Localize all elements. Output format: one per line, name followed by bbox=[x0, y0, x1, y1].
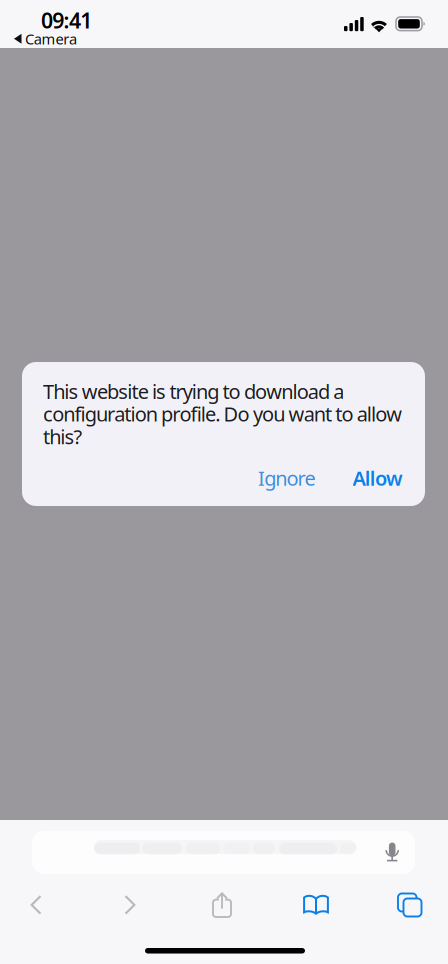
button[interactable]: Back bbox=[0, 882, 72, 928]
button[interactable]: Forward bbox=[94, 882, 166, 928]
staticText: This website is trying to download a con… bbox=[43, 378, 402, 450]
staticText: Ignore bbox=[258, 465, 316, 491]
button[interactable]: Share bbox=[186, 882, 258, 928]
button[interactable]: Tabs bbox=[374, 882, 446, 928]
staticText: Allow bbox=[353, 465, 403, 491]
button[interactable]: Ignore bbox=[258, 463, 316, 493]
button[interactable]: Bookmarks bbox=[280, 882, 352, 928]
button[interactable]: Allow bbox=[353, 463, 403, 493]
staticText: Camera bbox=[25, 29, 77, 48]
staticText: 09:41 bbox=[41, 6, 92, 34]
